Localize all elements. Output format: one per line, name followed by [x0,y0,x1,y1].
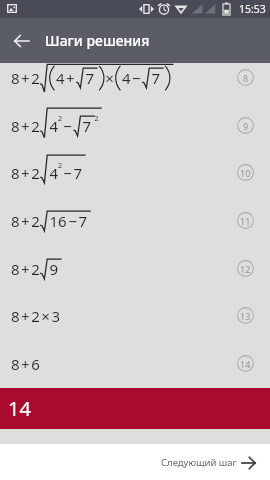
button[interactable]: 13 [0,292,270,340]
button[interactable]: 8 [0,54,270,102]
staticText: 15:53 [239,2,266,16]
staticText: 14 [240,358,251,370]
button[interactable]: 14 [0,388,270,429]
staticText: 14 [8,395,31,422]
button[interactable]: Следующий шаг [149,450,270,475]
staticText: 13 [240,310,251,322]
staticText: 10 [240,167,251,179]
button[interactable]: 9 [0,102,270,150]
button[interactable]: Back [0,18,42,63]
staticText: 11 [240,215,251,227]
staticText: 8 [243,72,249,84]
button[interactable]: 11 [0,197,270,245]
button[interactable]: 14 [0,340,270,388]
button[interactable]: 12 [0,245,270,293]
staticText: Следующий шаг [161,456,237,469]
staticText: 9 [243,120,249,132]
staticText: 12 [240,263,251,275]
staticText: Шаги решения [45,31,150,50]
button[interactable]: 10 [0,149,270,197]
